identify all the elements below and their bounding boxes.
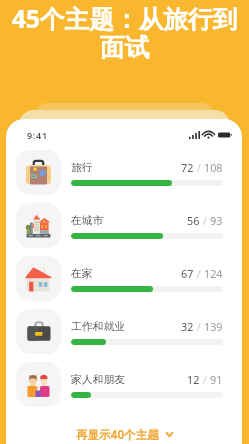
staticText: 45个主题：从旅行到面试	[6, 2, 243, 63]
staticText: 家人和朋友	[71, 373, 125, 387]
staticText: 9:41	[27, 129, 48, 141]
other: 在家	[16, 256, 61, 301]
staticText: 91	[210, 372, 223, 387]
staticText: 56	[187, 213, 200, 228]
staticText: /	[194, 266, 204, 281]
other: 旅行	[16, 150, 61, 195]
staticText: 139	[204, 319, 223, 334]
staticText: /	[200, 213, 210, 228]
staticText: 72	[181, 160, 194, 175]
staticText: 67	[181, 266, 194, 281]
staticText: 32	[181, 319, 194, 334]
staticText: 在家	[71, 267, 93, 281]
button[interactable]: 在城市	[6, 199, 242, 252]
button[interactable]: 再显示40个主题	[70, 424, 179, 444]
staticText: 93	[210, 213, 223, 228]
button[interactable]: 在家	[6, 252, 242, 305]
staticText: /	[194, 160, 204, 175]
other: 工作和就业	[16, 309, 61, 354]
staticText: 工作和就业	[71, 320, 125, 334]
staticText: 旅行	[71, 161, 93, 175]
staticText: 再显示40个主题	[76, 427, 159, 441]
button[interactable]: 旅行	[6, 146, 242, 199]
staticText: 12	[187, 372, 200, 387]
button[interactable]: 工作和就业	[6, 305, 242, 358]
staticText: /	[194, 319, 204, 334]
button[interactable]: 家人和朋友	[6, 358, 242, 411]
other: 在城市	[16, 203, 61, 248]
staticText: 124	[204, 266, 223, 281]
staticText: 108	[204, 160, 223, 175]
staticText: 在城市	[71, 214, 104, 228]
staticText: /	[200, 372, 210, 387]
other: 家人和朋友	[16, 362, 61, 407]
